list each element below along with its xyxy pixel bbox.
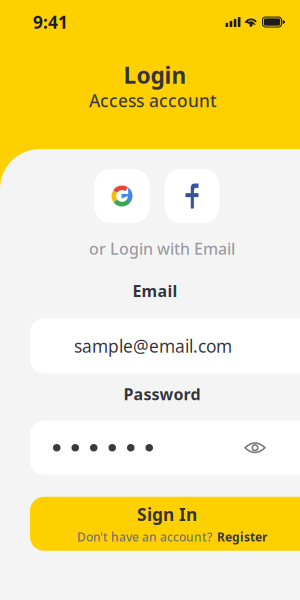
staticText: Access account <box>89 89 217 112</box>
button[interactable]: Sign in with Google <box>94 169 149 223</box>
staticText: or Login with Email <box>89 238 235 259</box>
staticText: Don't have an account? <box>77 529 212 545</box>
staticText: Register <box>217 529 267 545</box>
button[interactable]: Sign in with Facebook <box>164 169 219 223</box>
staticText: Login <box>123 60 186 90</box>
button[interactable]: Show password <box>243 438 300 458</box>
staticText: Email <box>132 280 177 301</box>
staticText: Sign In <box>137 503 197 526</box>
staticText: 9:41 <box>33 10 68 33</box>
staticText: sample@email.com <box>74 334 232 357</box>
button[interactable]: Sign In <box>0 497 300 551</box>
staticText: Password <box>123 383 200 405</box>
